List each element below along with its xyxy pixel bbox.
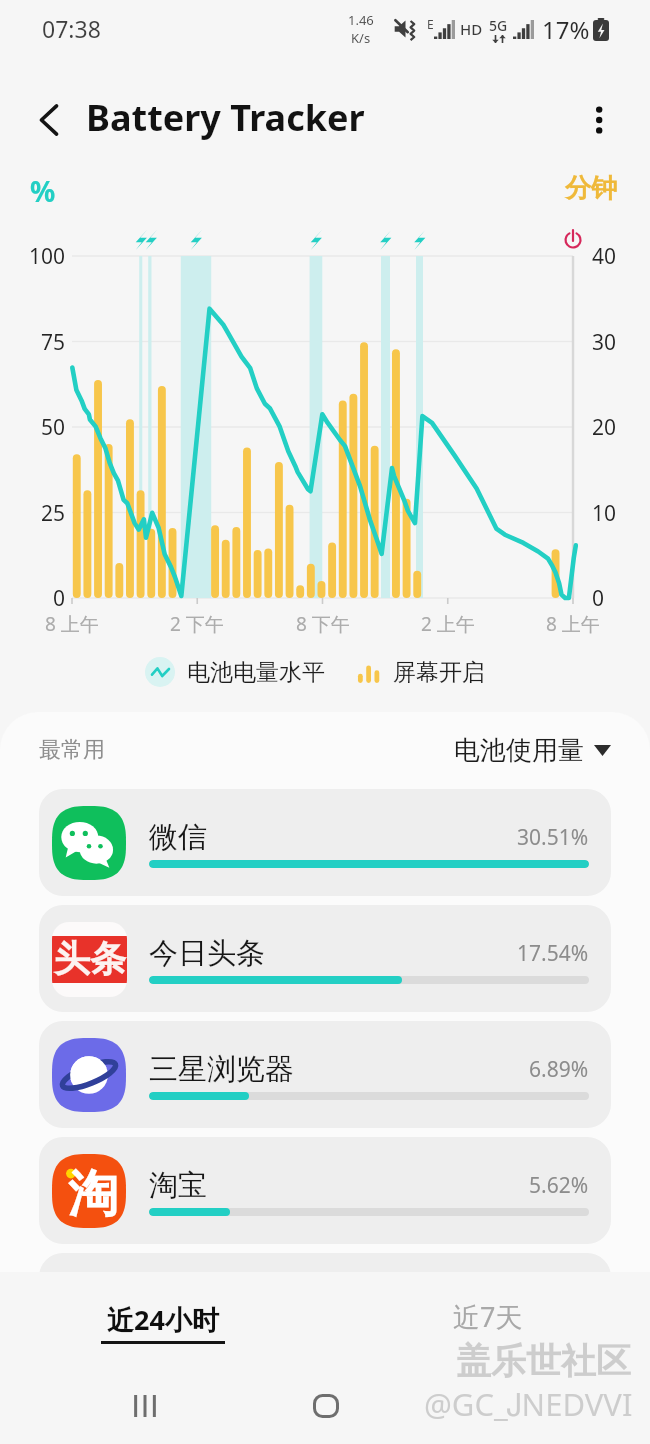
button[interactable]: 微信: [39, 789, 611, 896]
staticText: 8 上午: [45, 611, 99, 637]
staticText: Battery Tracker: [86, 93, 365, 142]
staticText: 20: [592, 413, 617, 442]
staticText: @GC_ᎫNEDVVI: [424, 1383, 633, 1425]
staticText: 微信: [149, 819, 207, 856]
staticText: E: [427, 16, 434, 32]
staticText: 分钟: [565, 172, 617, 205]
staticText: 17.54%: [517, 939, 589, 968]
staticText: 5.62%: [529, 1171, 589, 1200]
staticText: 75: [0, 328, 65, 357]
staticText: 头条: [54, 936, 126, 981]
button[interactable]: Back: [25, 96, 73, 144]
staticText: 近7天: [453, 1298, 523, 1335]
button[interactable]: 电池使用量: [454, 734, 611, 767]
button[interactable]: 淘: [39, 1137, 611, 1244]
staticText: HD: [460, 19, 483, 39]
staticText: %: [30, 172, 56, 210]
button[interactable]: More options: [575, 96, 623, 144]
staticText: 100: [0, 242, 65, 271]
staticText: 1.46: [348, 11, 374, 29]
staticText: 0: [592, 584, 605, 613]
staticText: 近24小时: [107, 1301, 219, 1338]
staticText: 30: [592, 328, 617, 357]
staticText: 17%: [542, 13, 590, 46]
staticText: 淘: [68, 1163, 118, 1226]
button[interactable]: 三星浏览器: [39, 1021, 611, 1128]
staticText: 8 下午: [296, 611, 350, 637]
button[interactable]: 近7天: [325, 1272, 650, 1372]
staticText: 5G: [489, 16, 508, 35]
staticText: 25: [0, 499, 65, 528]
staticText: 今日头条: [149, 935, 265, 972]
button[interactable]: Back: [480, 1382, 532, 1430]
staticText: 屏幕开启: [393, 658, 485, 687]
staticText: 电池电量水平: [187, 658, 325, 687]
staticText: 盖乐世社区: [456, 1339, 631, 1383]
staticText: 07:38: [42, 13, 101, 44]
staticText: 2 上午: [421, 611, 475, 637]
staticText: 淘宝: [149, 1167, 207, 1204]
button[interactable]: 头条: [39, 905, 611, 1012]
button[interactable]: 近24小时: [0, 1272, 325, 1372]
staticText: 电池使用量: [454, 734, 584, 767]
staticText: 三星浏览器: [149, 1051, 294, 1088]
staticText: K/s: [351, 29, 371, 47]
staticText: 6.89%: [529, 1055, 589, 1084]
staticText: 2 下午: [170, 611, 224, 637]
staticText: 10: [592, 499, 617, 528]
button[interactable]: Recents: [118, 1382, 172, 1430]
staticText: 0: [0, 584, 65, 613]
staticText: 40: [592, 242, 617, 271]
staticText: 8 上午: [546, 611, 600, 637]
button[interactable]: Home: [300, 1382, 352, 1430]
staticText: 50: [0, 413, 65, 442]
staticText: 30.51%: [517, 823, 589, 852]
staticText: 最常用: [39, 736, 105, 764]
